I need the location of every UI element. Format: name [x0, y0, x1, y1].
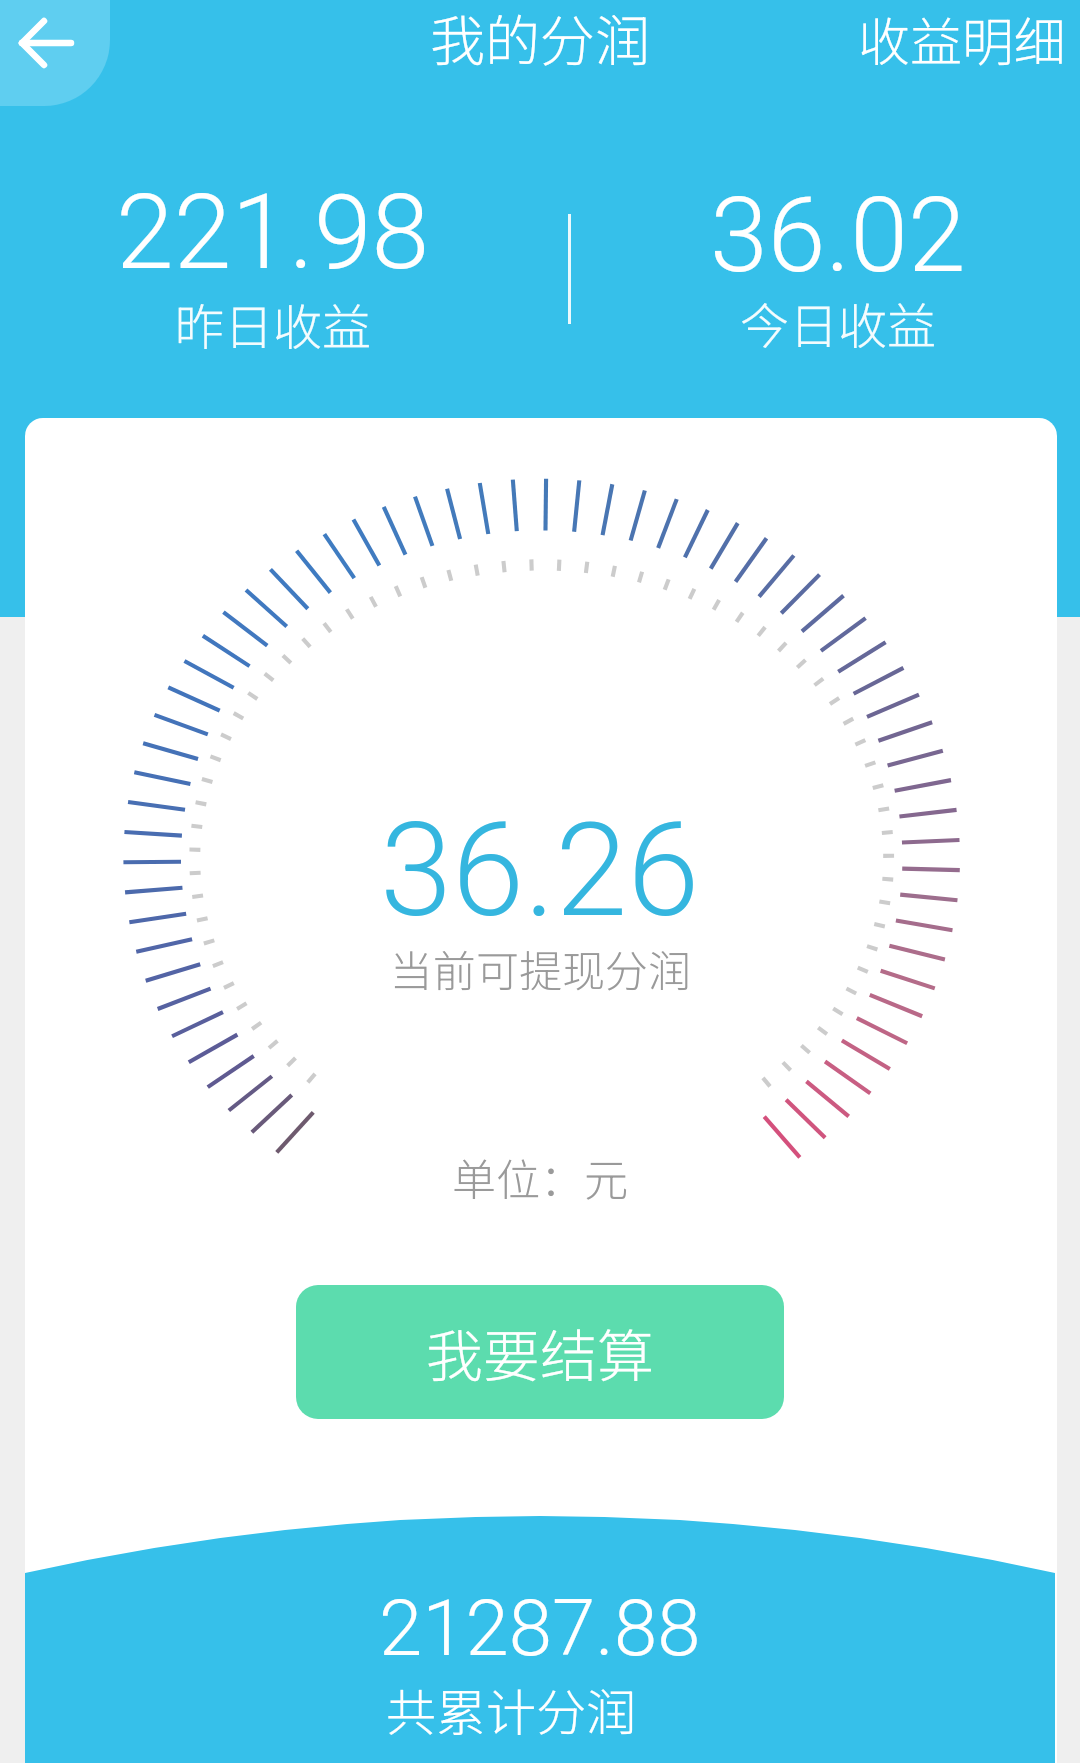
- staticText: 我的分润: [430, 0, 651, 77]
- staticText: 共累计分润: [386, 1673, 636, 1745]
- staticText: 今日收益: [740, 287, 937, 358]
- button[interactable]: Back: [0, 0, 110, 106]
- staticText: 单位：元: [452, 1145, 628, 1209]
- staticText: 我要结算: [426, 1311, 654, 1394]
- staticText: 36.02: [710, 175, 966, 297]
- staticText: 当前可提现分润: [390, 937, 691, 999]
- staticText: 昨日收益: [175, 288, 372, 359]
- button[interactable]: 我要结算: [296, 1285, 784, 1419]
- button[interactable]: 收益明细: [837, 0, 1080, 86]
- staticText: 收益明细: [858, 1, 1067, 76]
- staticText: 221.98: [116, 172, 430, 294]
- staticText: 36.26: [380, 794, 700, 946]
- staticText: 21287.88: [379, 1583, 701, 1674]
